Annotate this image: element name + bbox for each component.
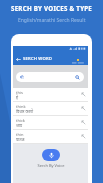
button[interactable]: this — [13, 88, 88, 101]
staticText: पातळ — [16, 137, 25, 142]
staticText: जाड — [16, 123, 23, 128]
button[interactable]: thick — [13, 116, 88, 129]
staticText: हे — [16, 95, 19, 100]
button[interactable]: thin — [13, 130, 88, 143]
button[interactable]: Back — [16, 57, 21, 62]
staticText: thick — [16, 118, 26, 123]
button[interactable]: मी — [16, 72, 84, 82]
staticText: SERCH BY VOICES & TYPE — [11, 4, 93, 12]
staticText: think — [16, 104, 26, 109]
staticText: Serch By Voice — [37, 163, 65, 168]
staticText: विचार करणे — [16, 109, 34, 114]
button[interactable]: think — [13, 102, 88, 115]
staticText: this — [16, 90, 23, 95]
staticText: thin — [16, 132, 24, 137]
staticText: SERCH WORD — [23, 56, 53, 62]
staticText: मी — [20, 75, 24, 80]
button[interactable]: Search by voice — [42, 149, 60, 161]
staticText: English/marathi Serch Result — [18, 17, 86, 24]
